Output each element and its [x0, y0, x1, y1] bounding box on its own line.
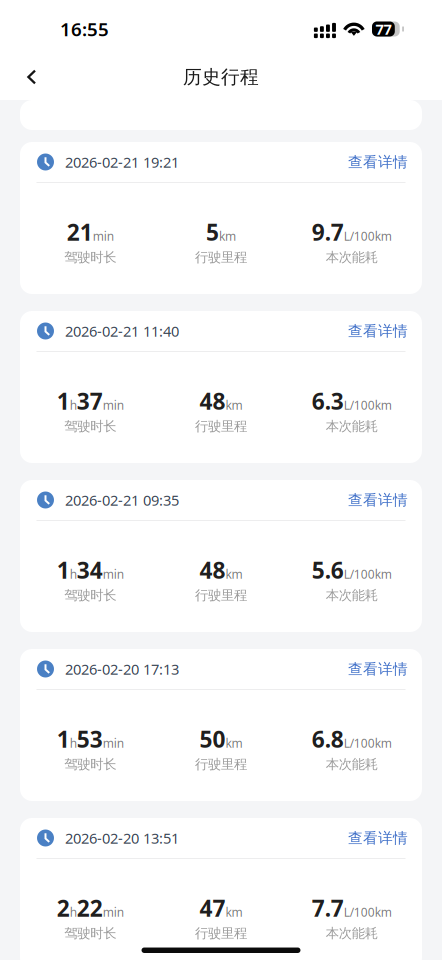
- staticText: 2026-02-20 17:13: [65, 659, 179, 679]
- staticText: min: [93, 228, 114, 244]
- staticText: 7.7: [312, 893, 344, 923]
- staticText: L/100km: [344, 904, 392, 920]
- staticText: min: [103, 735, 124, 751]
- staticText: min: [103, 397, 124, 413]
- staticText: h: [70, 397, 77, 413]
- staticText: km: [225, 566, 242, 582]
- staticText: km: [219, 228, 236, 244]
- staticText: 行驶里程: [195, 756, 247, 772]
- button[interactable]: Back: [0, 55, 52, 99]
- staticText: 22: [77, 893, 103, 923]
- button[interactable]: 查看详情: [348, 153, 408, 171]
- staticText: 查看详情: [348, 153, 408, 171]
- button[interactable]: 查看详情: [348, 829, 408, 847]
- staticText: L/100km: [344, 397, 392, 413]
- staticText: h: [70, 735, 77, 751]
- staticText: 查看详情: [348, 829, 408, 847]
- staticText: 行驶里程: [195, 418, 247, 434]
- staticText: min: [103, 566, 124, 582]
- staticText: 16:55: [60, 17, 109, 41]
- staticText: 查看详情: [348, 660, 408, 678]
- staticText: km: [225, 904, 242, 920]
- staticText: 53: [77, 724, 103, 754]
- staticText: L/100km: [344, 566, 392, 582]
- staticText: 历史行程: [183, 65, 259, 88]
- staticText: 77: [375, 19, 391, 39]
- staticText: 5: [206, 217, 219, 247]
- staticText: 47: [199, 893, 225, 923]
- staticText: 本次能耗: [326, 418, 378, 434]
- staticText: 5.6: [312, 555, 344, 585]
- staticText: 37: [77, 386, 103, 416]
- staticText: 1: [57, 724, 70, 754]
- staticText: 2026-02-21 19:21: [65, 152, 179, 172]
- staticText: 2026-02-21 09:35: [65, 490, 179, 510]
- staticText: L/100km: [344, 735, 392, 751]
- staticText: km: [225, 397, 242, 413]
- staticText: km: [225, 735, 242, 751]
- staticText: 6.3: [312, 386, 344, 416]
- staticText: 2026-02-20 13:51: [65, 828, 179, 848]
- staticText: L/100km: [344, 228, 392, 244]
- staticText: h: [70, 566, 77, 582]
- staticText: 34: [77, 555, 103, 585]
- staticText: 查看详情: [348, 491, 408, 509]
- staticText: 本次能耗: [326, 587, 378, 603]
- staticText: 6.8: [312, 724, 344, 754]
- staticText: 9.7: [312, 217, 344, 247]
- staticText: 本次能耗: [326, 756, 378, 772]
- button[interactable]: 查看详情: [348, 491, 408, 509]
- staticText: 行驶里程: [195, 587, 247, 603]
- staticText: 1: [57, 386, 70, 416]
- staticText: 本次能耗: [326, 925, 378, 941]
- staticText: 48: [199, 555, 225, 585]
- staticText: 查看详情: [348, 322, 408, 340]
- staticText: 21: [67, 217, 93, 247]
- staticText: 2: [57, 893, 70, 923]
- staticText: 驾驶时长: [64, 925, 116, 941]
- staticText: 行驶里程: [195, 925, 247, 941]
- staticText: 本次能耗: [326, 249, 378, 265]
- button[interactable]: 查看详情: [348, 322, 408, 340]
- staticText: 驾驶时长: [64, 249, 116, 265]
- staticText: 50: [199, 724, 225, 754]
- staticText: 驾驶时长: [64, 418, 116, 434]
- staticText: 驾驶时长: [64, 756, 116, 772]
- button[interactable]: 查看详情: [348, 660, 408, 678]
- staticText: 2026-02-21 11:40: [65, 321, 179, 341]
- staticText: 1: [57, 555, 70, 585]
- staticText: 驾驶时长: [64, 587, 116, 603]
- staticText: h: [70, 904, 77, 920]
- staticText: 48: [199, 386, 225, 416]
- staticText: min: [103, 904, 124, 920]
- staticText: 行驶里程: [195, 249, 247, 265]
